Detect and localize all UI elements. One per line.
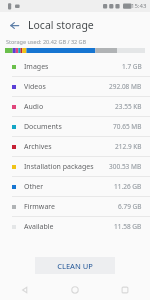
button[interactable]: Installation packages	[0, 157, 150, 176]
staticText: Other	[24, 182, 44, 192]
button[interactable]: Available	[0, 217, 150, 236]
staticText: Documents	[24, 122, 62, 132]
staticText: 70.65 MB	[113, 122, 142, 131]
staticText: Installation packages	[24, 162, 94, 172]
staticText: 23.55 KB	[115, 102, 142, 111]
staticText: Images	[24, 62, 49, 72]
button[interactable]: Documents	[0, 117, 150, 136]
staticText: Audio	[24, 102, 44, 112]
button[interactable]: Other	[0, 177, 150, 196]
staticText: 11.26 GB	[114, 182, 142, 191]
staticText: Firmware	[24, 202, 56, 212]
staticText: 11.58 GB	[114, 222, 142, 231]
button[interactable]: Images	[0, 57, 150, 76]
button[interactable]: Firmware	[0, 197, 150, 216]
button[interactable]: Home	[50, 280, 100, 300]
button[interactable]: Audio	[0, 97, 150, 116]
staticText: 300.53 MB	[109, 162, 142, 171]
button[interactable]: Back	[4, 15, 24, 35]
button[interactable]: CLEAN UP	[35, 257, 115, 274]
staticText: Videos	[24, 82, 46, 92]
button[interactable]: Recent apps	[100, 280, 150, 300]
staticText: 15:43	[131, 2, 147, 10]
staticText: 6.79 GB	[118, 202, 142, 211]
staticText: 212.9 KB	[115, 142, 142, 151]
staticText: Storage used: 20.42 GB / 32 GB	[6, 38, 87, 45]
button[interactable]: Archives	[0, 137, 150, 156]
button[interactable]: Videos	[0, 77, 150, 96]
staticText: Local storage	[28, 18, 94, 32]
staticText: Archives	[24, 142, 52, 152]
staticText: Available	[24, 222, 54, 232]
staticText: 292.08 MB	[109, 82, 142, 91]
staticText: CLEAN UP	[57, 261, 93, 271]
button[interactable]: Back	[0, 280, 50, 300]
staticText: 1.7 GB	[122, 62, 142, 71]
